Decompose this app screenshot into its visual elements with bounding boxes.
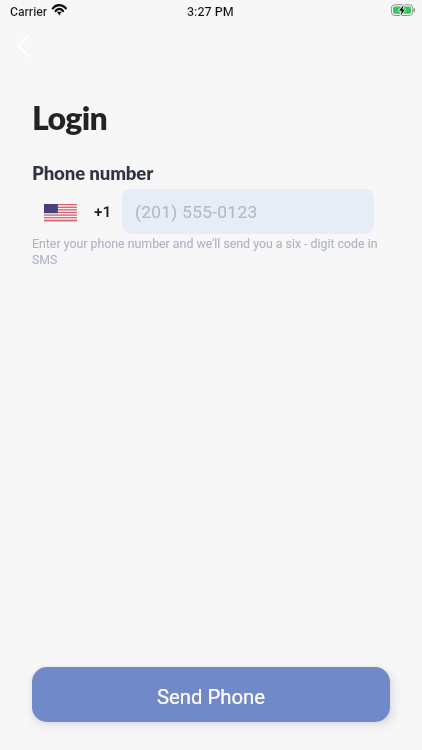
staticText: Phone number: [32, 162, 154, 184]
staticText: +1: [94, 203, 112, 221]
staticText: Enter your phone number and we'll send y…: [32, 237, 382, 267]
button[interactable]: (201) 555-0123: [122, 189, 374, 234]
staticText: Carrier: [10, 5, 48, 19]
staticText: 3:27 PM: [187, 4, 234, 19]
button[interactable]: Send Phone: [32, 667, 390, 722]
button[interactable]: +1: [32, 189, 122, 234]
staticText: (201) 555-0123: [135, 202, 258, 222]
staticText: Send Phone: [157, 685, 266, 709]
staticText: Login: [32, 98, 108, 136]
